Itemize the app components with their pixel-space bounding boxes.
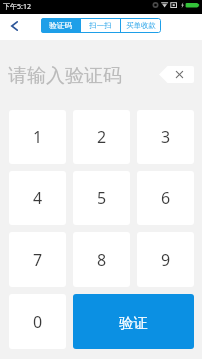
button[interactable]: 1 [9,110,66,164]
button[interactable]: 0 [9,294,66,349]
staticText: 验证码 [49,21,72,30]
button[interactable]: 3 [137,110,194,164]
button[interactable]: 验证 [73,294,194,349]
button[interactable]: 验证码 [41,18,80,33]
staticText: 6 [161,187,171,209]
staticText: 2 [97,126,107,148]
button[interactable]: Back [1,13,27,39]
staticText: 9 [161,249,171,271]
staticText: 4 [33,187,43,209]
button[interactable]: 2 [73,110,130,164]
staticText: 扫一扫 [89,21,112,30]
staticText: 5 [97,187,107,209]
staticText: 0 [33,311,43,333]
staticText: 7 [33,249,43,271]
staticText: 3 [161,126,171,148]
button[interactable]: 7 [9,232,66,287]
button[interactable]: 8 [73,232,130,287]
button[interactable]: Delete [159,66,194,83]
staticText: 验证 [119,314,148,332]
button[interactable]: 6 [137,171,194,225]
staticText: 8 [97,249,107,271]
staticText: 请输入验证码 [8,64,122,88]
staticText: 下午5:12 [3,2,31,12]
staticText: 1 [33,126,43,148]
button[interactable]: 扫一扫 [81,18,120,33]
staticText: 买单收款 [126,21,156,30]
button[interactable]: 4 [9,171,66,225]
button[interactable]: 9 [137,232,194,287]
button[interactable]: 5 [73,171,130,225]
button[interactable]: 买单收款 [121,18,161,33]
